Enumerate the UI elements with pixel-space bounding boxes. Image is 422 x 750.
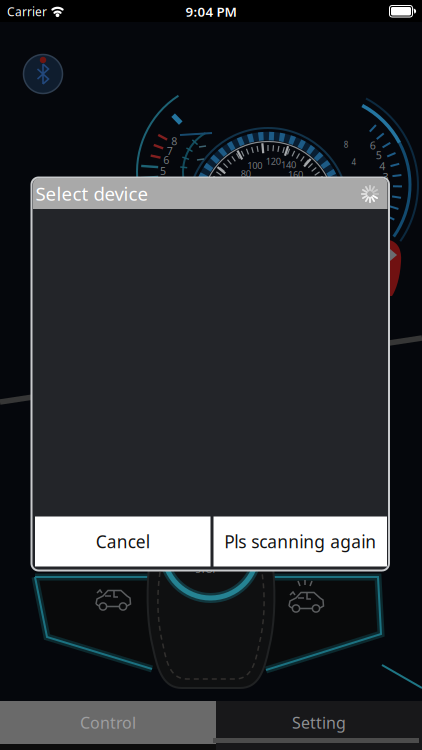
button[interactable]: Cancel <box>35 516 210 566</box>
button[interactable]: Lock car <box>85 575 141 619</box>
staticText: Select device <box>35 181 148 206</box>
staticText: 4 <box>351 157 356 167</box>
staticText: 8 <box>344 139 349 150</box>
staticText: 100 <box>247 159 262 172</box>
staticText: Cancel <box>96 530 150 553</box>
button[interactable]: Setting <box>216 701 422 750</box>
button[interactable]: Control <box>0 701 216 750</box>
staticText: 8 <box>171 134 177 148</box>
staticText: 5 <box>160 164 166 178</box>
staticText: 3 <box>382 170 388 184</box>
button[interactable]: Bluetooth <box>22 53 64 95</box>
staticText: Setting <box>292 712 346 733</box>
staticText: 9:04 PM <box>185 3 236 20</box>
staticText: 160 <box>288 168 303 180</box>
staticText: 120 <box>266 155 281 167</box>
staticText: 5 <box>376 148 382 162</box>
staticText: 7 <box>167 144 173 158</box>
staticText: 6 <box>163 153 169 167</box>
button[interactable]: Unlock car <box>278 577 334 621</box>
staticText: 4 <box>379 159 385 173</box>
staticText: Control <box>80 712 136 733</box>
staticText: 80 <box>241 167 251 180</box>
staticText: STOP <box>195 563 218 576</box>
staticText: 140 <box>281 158 296 171</box>
staticText: Pls scanning again <box>224 530 376 553</box>
staticText: 6 <box>370 138 376 152</box>
button[interactable]: Pls scanning again <box>213 516 387 566</box>
staticText: Carrier <box>7 3 47 19</box>
